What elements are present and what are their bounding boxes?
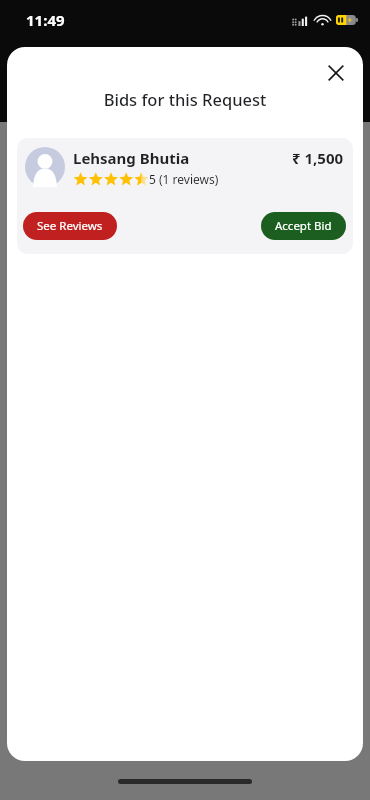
staticText: Accept Bid	[275, 218, 332, 234]
staticText: Bids for this Request	[7, 88, 363, 110]
button[interactable]: Lehsang Bhutia	[17, 138, 353, 254]
staticText: ₹ 1,500	[292, 148, 344, 168]
button[interactable]: See Reviews	[23, 212, 117, 240]
button[interactable]: Close	[316, 53, 356, 93]
staticText: Lehsang Bhutia	[73, 148, 190, 168]
button[interactable]: Accept Bid	[261, 212, 346, 240]
staticText: See Reviews	[37, 218, 103, 234]
staticText: 11:49	[26, 10, 65, 30]
staticText: 5 (1 reviews)	[149, 171, 219, 187]
